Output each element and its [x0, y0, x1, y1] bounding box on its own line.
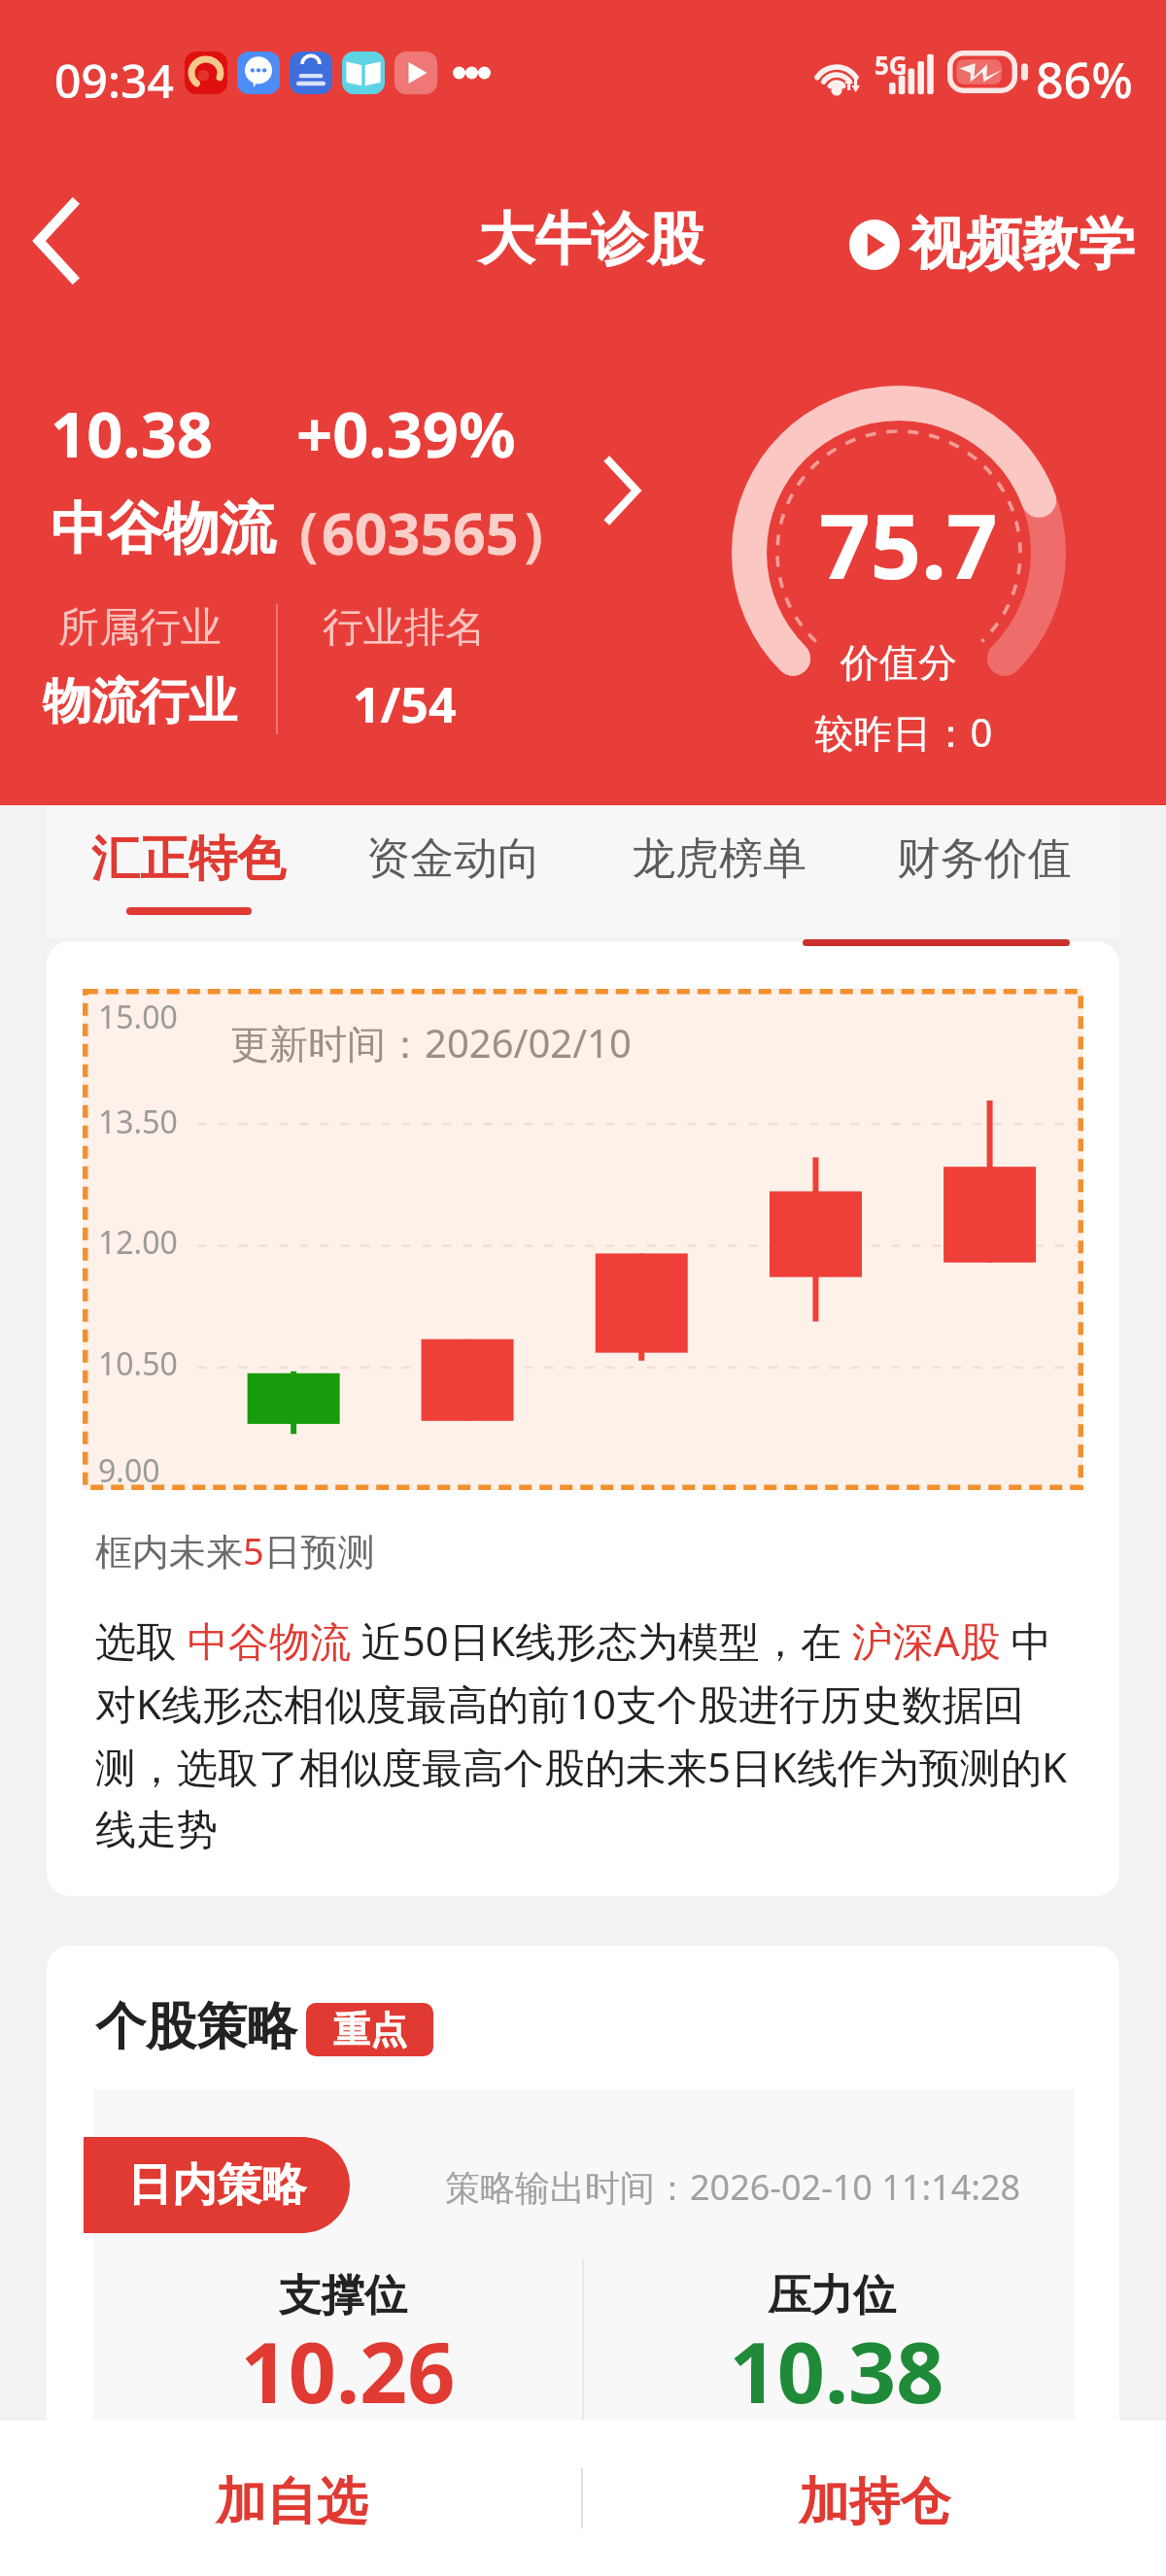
button[interactable]: 资金动向	[321, 805, 586, 937]
staticText: 资金动向	[366, 831, 541, 887]
staticText: 13.50	[98, 1101, 178, 1143]
staticText: 财务价值	[897, 831, 1072, 887]
staticText: 1/54	[353, 671, 457, 737]
button[interactable]: 财务价值	[851, 805, 1116, 937]
staticText: 龙虎榜单	[632, 831, 806, 887]
staticText: 汇正特色	[91, 829, 286, 890]
button[interactable]: 加持仓	[583, 2421, 1166, 2576]
staticText: 10.26	[103, 2314, 593, 2421]
staticText: 9.00	[98, 1449, 160, 1492]
staticText: +0.39%	[296, 390, 516, 477]
staticText: 大牛诊股	[478, 204, 703, 275]
staticText: 加持仓	[799, 2470, 950, 2534]
staticText: 所属行业	[58, 602, 222, 654]
staticText: 75.7	[819, 484, 998, 605]
staticText: 选取 中谷物流 近50日K线形态为模型，在 沪深A股 中对K线形态相似度最高的前…	[95, 1612, 1071, 1856]
staticText: 压力位	[587, 2269, 1077, 2322]
button[interactable]: Back	[8, 186, 103, 295]
button[interactable]: 龙虎榜单	[586, 805, 851, 937]
button[interactable]: 加自选	[0, 2421, 583, 2576]
staticText: 加自选	[216, 2470, 367, 2534]
staticText: 12.00	[98, 1221, 178, 1264]
staticText: 行业排名	[323, 602, 486, 654]
staticText: 15.00	[98, 996, 178, 1038]
button[interactable]: 日内策略	[84, 2137, 350, 2233]
staticText: 中谷物流	[51, 493, 276, 564]
staticText: 个股策略	[95, 1995, 297, 2059]
staticText: 策略输出时间：2026-02-10 11:14:28	[445, 2163, 1021, 2211]
button[interactable]: Stock detail	[579, 437, 667, 544]
staticText: 物流行业	[43, 671, 237, 732]
staticText: 10.50	[98, 1342, 178, 1385]
staticText: 86%	[1036, 47, 1133, 113]
staticText: 09:34	[54, 49, 174, 112]
staticText: 视频教学	[909, 209, 1135, 280]
button[interactable]: 汇正特色	[55, 805, 321, 937]
staticText: 日内策略	[127, 2157, 306, 2214]
button[interactable]: 视频教学	[843, 203, 1141, 286]
staticText: 5G	[874, 48, 908, 82]
staticText: 10.38	[592, 2314, 1081, 2421]
staticText: 重点	[333, 2007, 407, 2053]
staticText: 较昨日：0	[787, 705, 1020, 759]
staticText: 10.38	[51, 390, 213, 477]
staticText: 价值分	[782, 638, 1015, 687]
staticText: 更新时间：2026/02/10	[230, 1016, 632, 1069]
staticText: （603565）	[264, 493, 576, 572]
staticText: 支撑位	[98, 2269, 588, 2322]
staticText: 框内未来5日预测	[95, 1525, 375, 1576]
